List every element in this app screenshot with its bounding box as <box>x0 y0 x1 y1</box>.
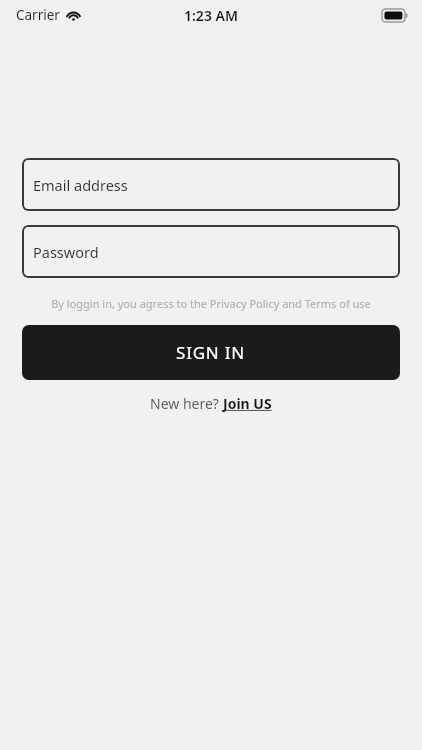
staticText: Carrier <box>16 6 60 24</box>
button[interactable]: Email address <box>22 158 400 211</box>
button[interactable]: Password <box>22 225 400 278</box>
button[interactable]: Join US <box>223 394 272 413</box>
staticText: SIGN IN <box>176 341 246 364</box>
staticText: Join US <box>223 394 272 413</box>
staticText: 1:23 AM <box>184 6 238 25</box>
staticText: Password <box>33 242 99 262</box>
button[interactable]: SIGN IN <box>22 325 400 380</box>
staticText: Email address <box>33 175 128 195</box>
staticText: New here? <box>150 394 223 413</box>
staticText: By loggin in, you agress to the Privacy … <box>0 296 422 311</box>
